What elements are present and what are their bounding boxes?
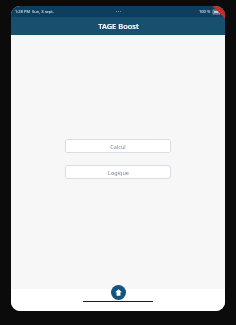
staticText: Calcul	[110, 143, 126, 150]
staticText: Logique	[108, 169, 129, 176]
button[interactable]: Home	[111, 285, 126, 300]
staticText: 100 %	[199, 9, 211, 14]
staticText: TAGE Boost	[98, 21, 139, 31]
staticText: 1:28 PM Sun, 3 sept.	[15, 9, 54, 14]
button[interactable]: Calcul	[65, 139, 171, 153]
button[interactable]: Logique	[65, 165, 171, 179]
